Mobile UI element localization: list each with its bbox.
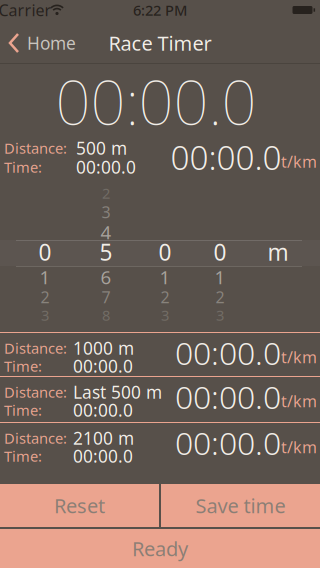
staticText: Distance:	[4, 382, 67, 402]
staticText: 0	[213, 237, 226, 267]
staticText: 1000 m	[73, 336, 134, 359]
staticText: Distance:	[4, 138, 67, 158]
button[interactable]: Reset	[0, 484, 159, 527]
staticText: 00:00.0	[76, 155, 136, 178]
staticText: 00:00.0	[175, 331, 281, 374]
staticText: Distance:	[4, 428, 67, 448]
staticText: Carrier	[0, 0, 51, 21]
staticText: m	[267, 237, 288, 267]
button[interactable]: Save time	[161, 484, 320, 527]
staticText: 2100 m	[73, 426, 134, 449]
staticText: 00:00.0	[73, 398, 133, 421]
staticText: 1	[159, 265, 170, 289]
staticText: t/km	[281, 151, 317, 172]
staticText: 2	[40, 286, 49, 308]
staticText: 6	[100, 265, 111, 289]
staticText: 2	[160, 286, 169, 308]
staticText: Time:	[4, 446, 42, 466]
button[interactable]: Home	[8, 27, 92, 59]
staticText: 00:00.0	[175, 421, 281, 464]
staticText: 0	[38, 237, 51, 267]
staticText: 3	[216, 305, 224, 325]
staticText: 00:00.0	[73, 444, 133, 467]
staticText: 8	[102, 305, 110, 325]
staticText: t/km	[281, 436, 317, 458]
staticText: 6:22 PM	[133, 0, 187, 20]
staticText: 3	[41, 305, 49, 325]
staticText: t/km	[281, 390, 317, 412]
staticText: 00:00.0	[170, 135, 281, 179]
staticText: Last 500 m	[73, 380, 162, 403]
staticText: 00:00.0	[175, 375, 281, 418]
button[interactable]: Ready	[0, 529, 320, 568]
staticText: Distance:	[4, 338, 67, 358]
staticText: 1	[214, 265, 225, 289]
staticText: 4	[100, 220, 111, 244]
staticText: Ready	[132, 535, 188, 562]
staticText: 0	[158, 237, 171, 267]
staticText: 500 m	[76, 136, 127, 159]
staticText: Home	[27, 31, 76, 54]
staticText: Save time	[195, 492, 285, 519]
staticText: Time:	[4, 400, 42, 420]
staticText: Time:	[4, 356, 42, 376]
staticText: 3	[161, 305, 169, 325]
staticText: 2	[102, 183, 110, 203]
staticText: Time:	[4, 157, 42, 177]
staticText: 7	[101, 286, 110, 308]
staticText: 00:00.0	[55, 60, 256, 142]
staticText: 1	[39, 265, 50, 289]
staticText: Reset	[54, 492, 105, 519]
staticText: Race Timer	[108, 30, 211, 56]
staticText: 5	[99, 237, 112, 267]
staticText: t/km	[281, 346, 317, 368]
staticText: 3	[101, 201, 110, 223]
staticText: 2	[215, 286, 224, 308]
staticText: 00:00.0	[73, 354, 133, 377]
